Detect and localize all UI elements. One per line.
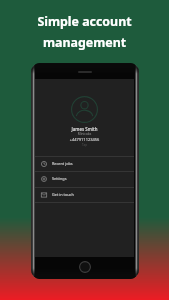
- staticText: James Smith: [35, 126, 134, 132]
- button[interactable]: Get in touch: [35, 187, 134, 202]
- staticText: Get in touch: [52, 192, 74, 197]
- staticText: Simple account management: [0, 13, 169, 51]
- button[interactable]: Recent jobs: [35, 156, 134, 171]
- button[interactable]: Settings: [35, 171, 134, 186]
- staticText: Settings: [52, 176, 67, 181]
- staticText: Minicabs: [35, 132, 134, 136]
- staticText: +447911123456: [35, 137, 134, 142]
- staticText: Recent jobs: [52, 161, 73, 166]
